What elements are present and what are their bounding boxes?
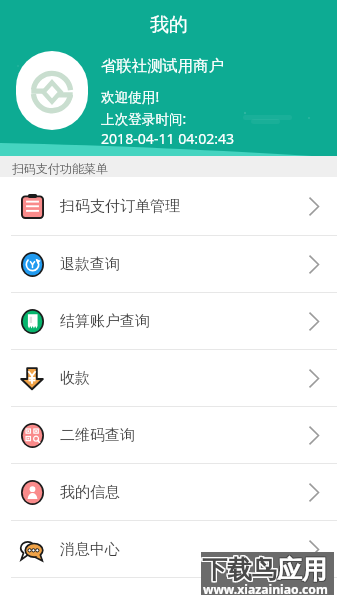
staticText: 应用 <box>278 553 328 584</box>
staticText: 退款查询 <box>60 255 309 274</box>
button[interactable]: 二维码查询 <box>0 407 337 464</box>
staticText: 下载鸟 <box>202 554 277 585</box>
staticText: 2018-04-11 04:02:43 <box>101 129 235 148</box>
button[interactable]: 扫码支付订单管理 <box>0 177 337 236</box>
staticText: 下载鸟 <box>202 555 277 586</box>
staticText: 下载鸟 <box>203 553 278 584</box>
staticText: 应用 <box>277 553 327 584</box>
staticText: 上次登录时间: <box>101 109 187 128</box>
staticText: 消息中心 <box>60 540 309 559</box>
button[interactable]: Profile avatar <box>16 51 88 130</box>
staticText: 下载鸟 <box>201 554 276 585</box>
staticText: 扫码支付订单管理 <box>60 197 309 216</box>
staticText: 应用 <box>276 555 326 586</box>
button[interactable]: 我的信息 <box>0 464 337 521</box>
button[interactable]: 结算账户查询 <box>0 293 337 350</box>
staticText: 应用 <box>276 553 326 584</box>
staticText: 应用 <box>278 554 328 585</box>
staticText: 收款 <box>60 369 309 388</box>
button[interactable]: 收款 <box>0 350 337 407</box>
staticText: 下载鸟 <box>202 553 277 584</box>
staticText: 下载鸟 <box>203 554 278 585</box>
staticText: 二维码查询 <box>60 426 309 445</box>
staticText: 下载鸟 <box>201 553 276 584</box>
staticText: www.xiazainiao.com <box>203 581 328 598</box>
staticText: 下载鸟 <box>203 555 278 586</box>
button[interactable]: 退款查询 <box>0 236 337 293</box>
staticText: 下载鸟 <box>201 555 276 586</box>
staticText: 扫码支付功能菜单 <box>12 161 108 176</box>
staticText: 结算账户查询 <box>60 312 309 331</box>
staticText: 我的信息 <box>60 483 309 502</box>
button[interactable]: 消息中心 <box>0 521 337 578</box>
staticText: 应用 <box>277 554 327 585</box>
staticText: 省联社测试用商户 <box>101 56 225 75</box>
staticText: 欢迎使用! <box>101 87 160 106</box>
staticText: 我的 <box>150 13 188 37</box>
staticText: 应用 <box>276 554 326 585</box>
staticText: 应用 <box>278 555 328 586</box>
staticText: 应用 <box>277 555 327 586</box>
